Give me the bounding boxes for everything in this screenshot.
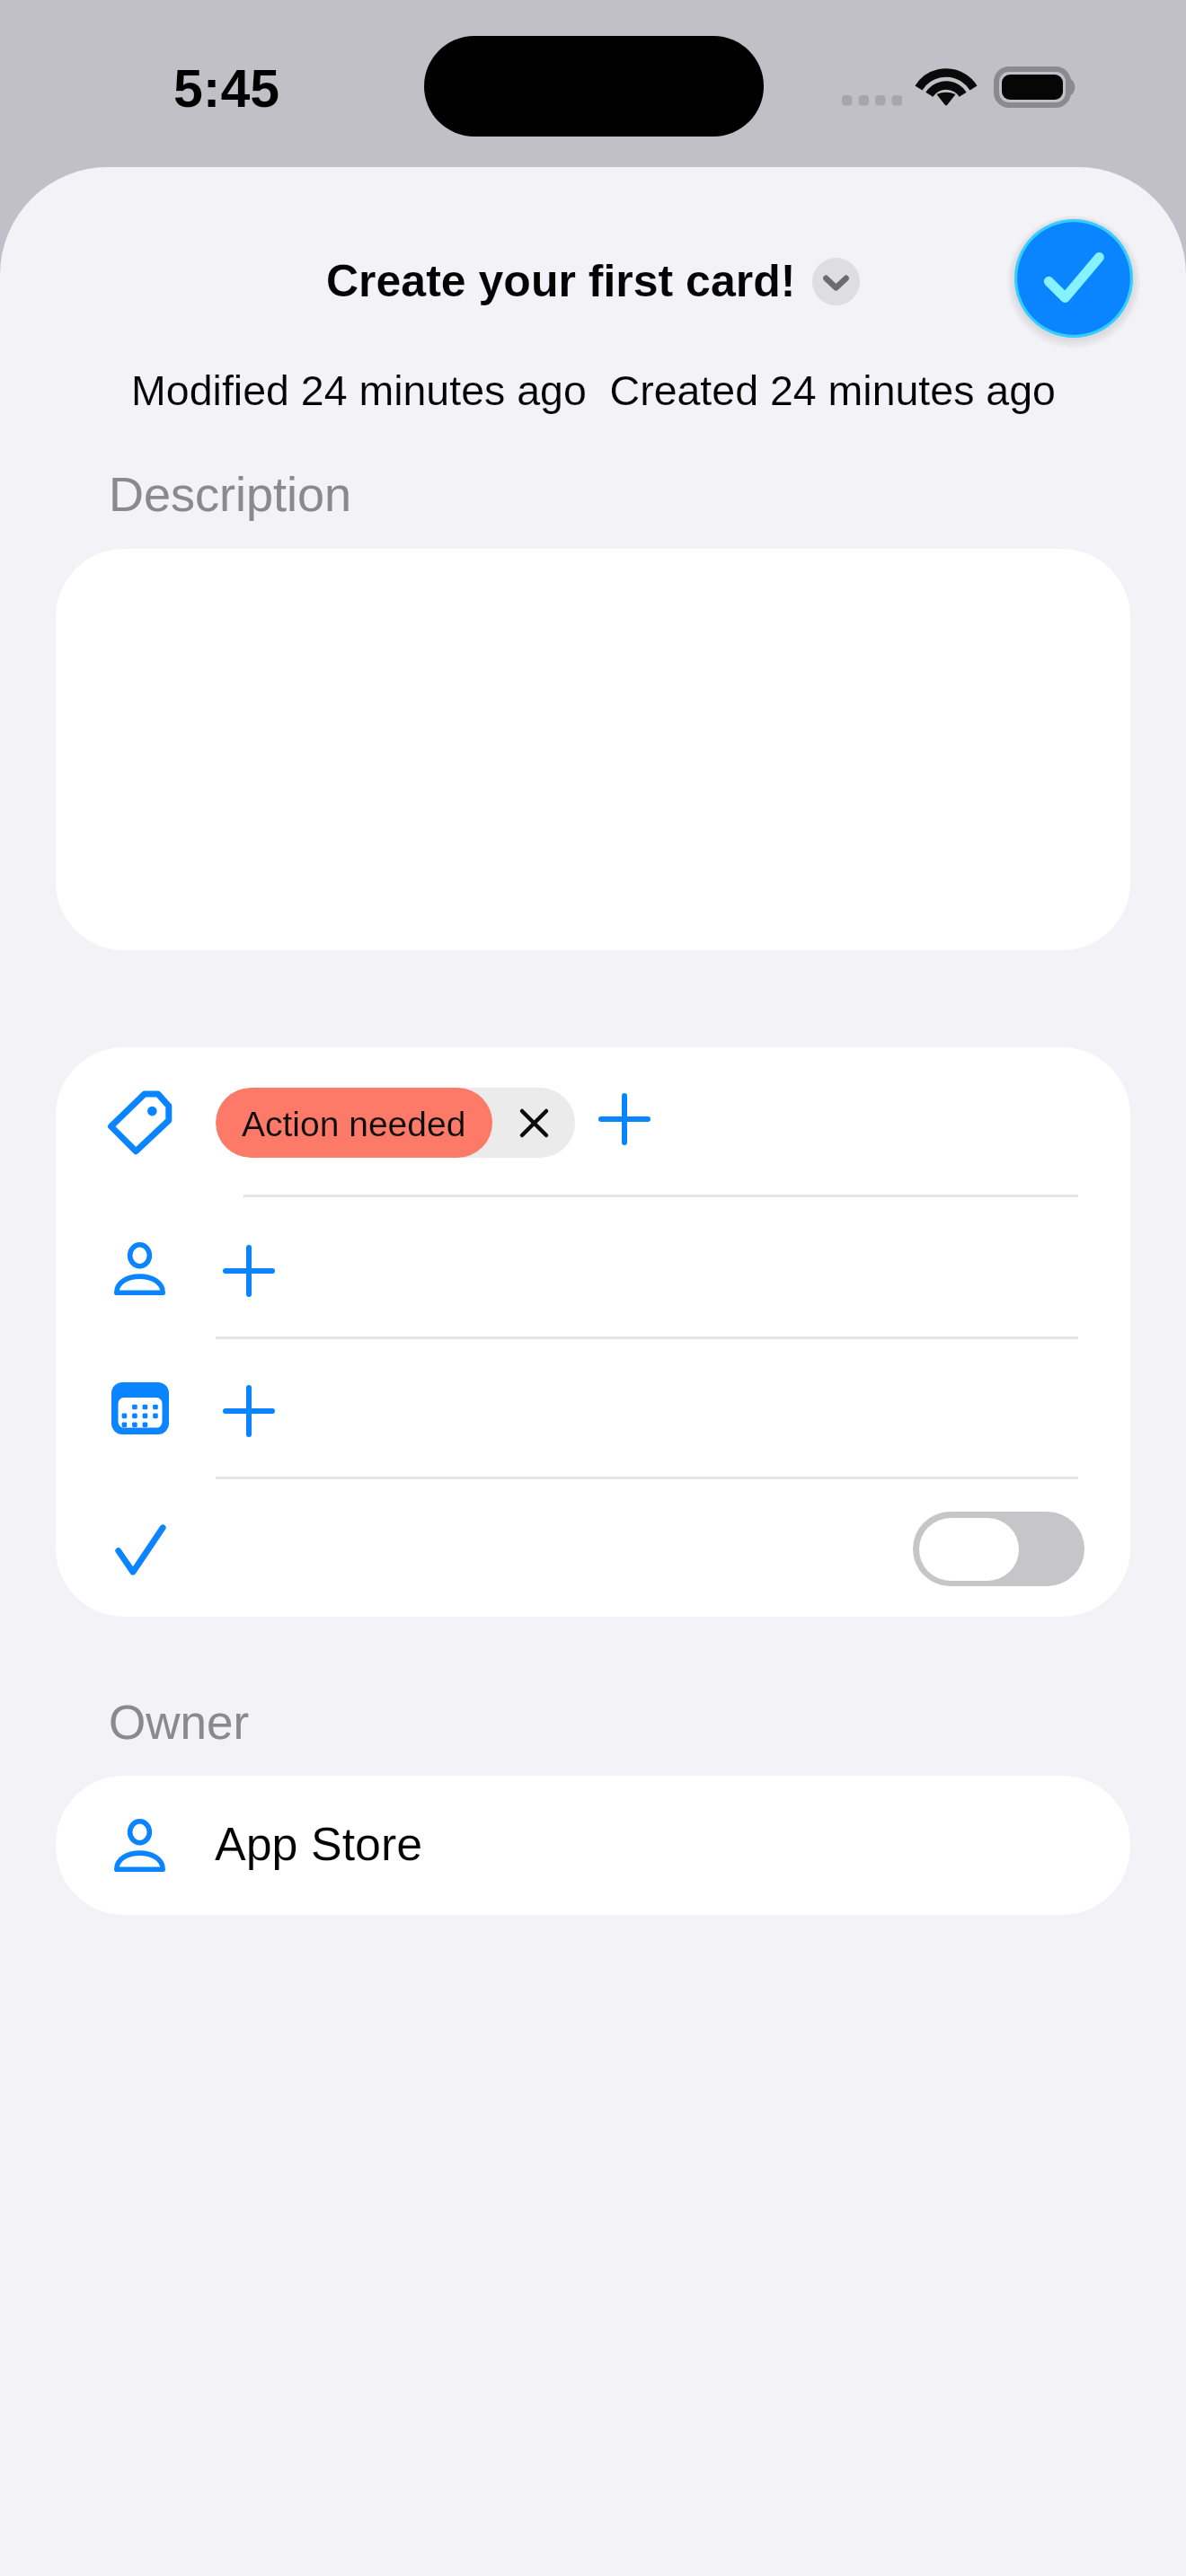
button[interactable]: Add (209, 1372, 288, 1451)
staticText: App Store (215, 1818, 423, 1870)
button[interactable]: Show more (812, 258, 860, 305)
staticText: Modified 24 minutes ago Created 24 minut… (131, 367, 1056, 414)
button[interactable]: Toggle completed (913, 1512, 1084, 1586)
button[interactable]: Add (209, 1231, 288, 1310)
staticText: Description (109, 467, 352, 521)
staticText: Create your first card! (326, 256, 796, 306)
staticText: Action needed (242, 1105, 466, 1144)
button[interactable]: Remove tag (492, 1088, 575, 1158)
button[interactable]: App Store (56, 1776, 1130, 1915)
staticText: Owner (109, 1696, 250, 1749)
button[interactable]: Add (585, 1080, 664, 1159)
button[interactable]: Action needed (216, 1088, 575, 1158)
staticText: 5:45 (173, 59, 280, 119)
button[interactable]: Save card (1014, 219, 1133, 338)
